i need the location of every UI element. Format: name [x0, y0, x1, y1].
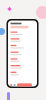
- button[interactable]: Continue: [17, 83, 32, 87]
